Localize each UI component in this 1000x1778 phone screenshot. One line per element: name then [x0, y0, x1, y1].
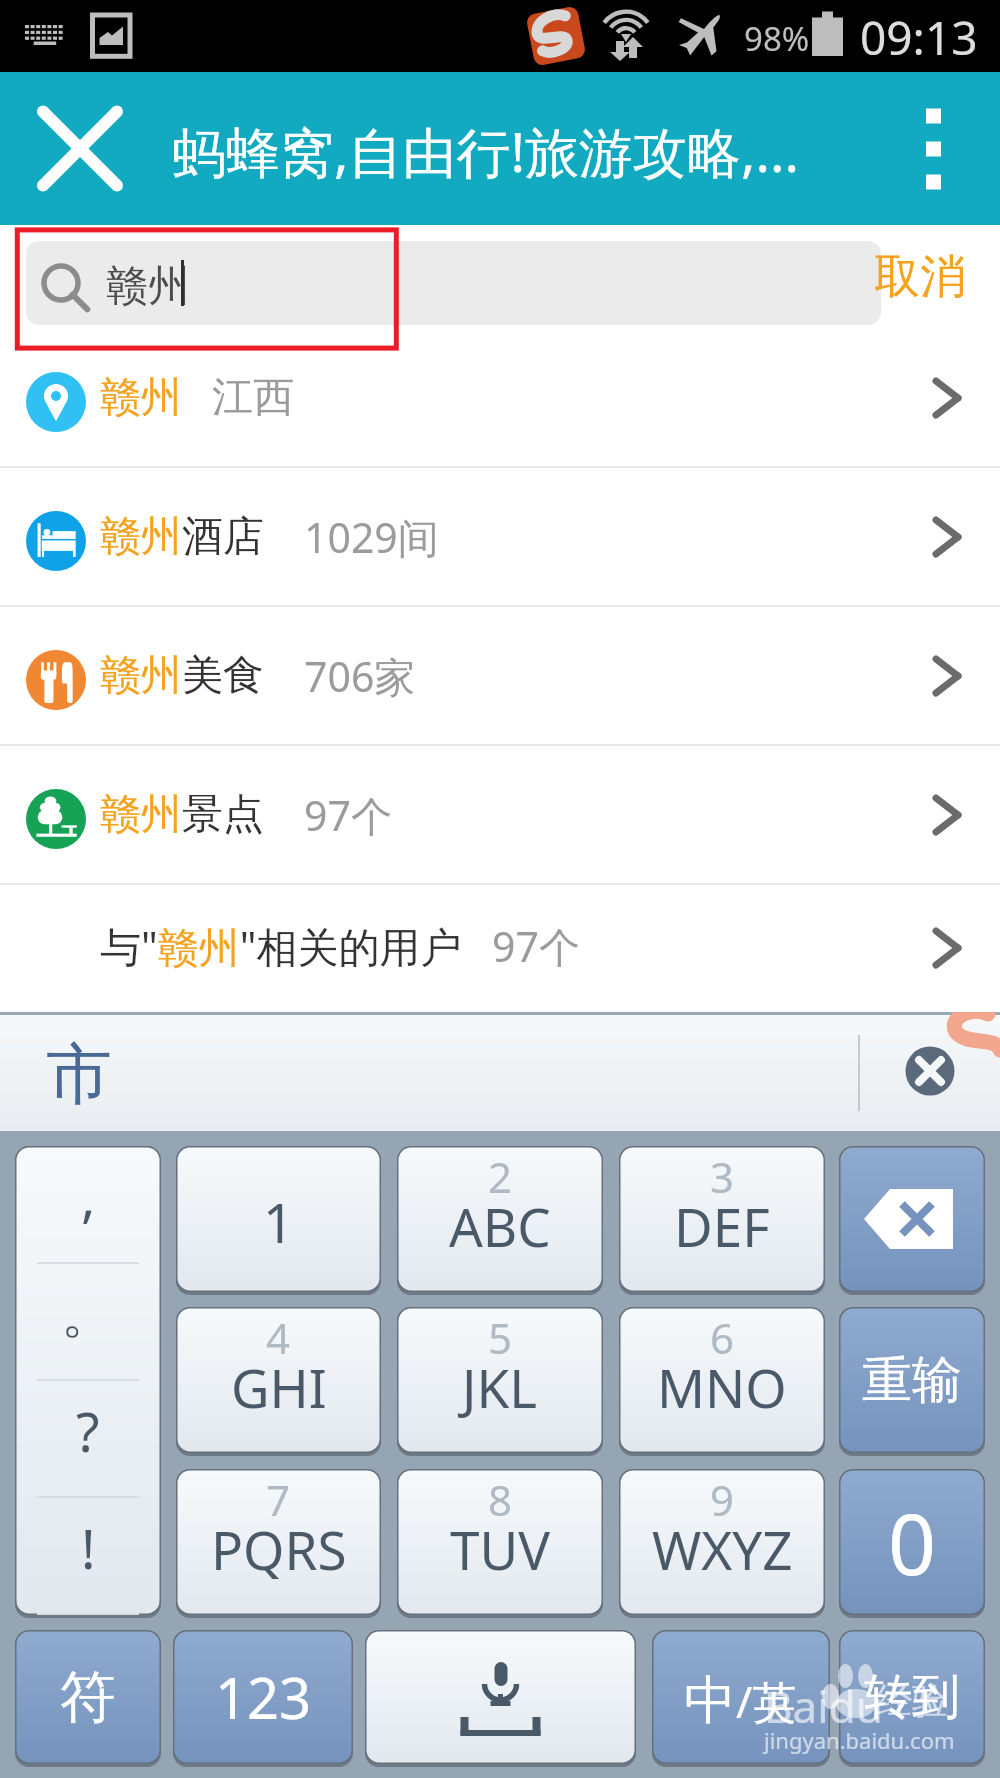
button[interactable]: 1 [176, 1146, 381, 1295]
staticText: 。 [61, 1280, 115, 1348]
staticText: 09:13 [860, 6, 978, 69]
staticText: 97个 [304, 787, 392, 843]
button[interactable]: 赣州景点 [0, 745, 1000, 884]
button[interactable]: 重输 [839, 1307, 985, 1456]
button[interactable]: 3 [619, 1146, 825, 1295]
button[interactable]: Voice input [365, 1630, 636, 1767]
staticText: ABC [449, 1190, 551, 1262]
staticText: 0 [888, 1485, 937, 1599]
button[interactable]: 赣州美食 [0, 606, 1000, 745]
staticText: 赣州美食 [100, 650, 264, 702]
staticText: 重输 [862, 1349, 962, 1412]
button[interactable]: 符 [15, 1630, 161, 1767]
staticText: 1029间 [304, 509, 439, 565]
staticText: 2 [488, 1148, 513, 1205]
button[interactable]: More options [890, 72, 1000, 225]
staticText: 与"赣州"相关的用户 [100, 918, 462, 974]
button[interactable]: 转到 [839, 1630, 985, 1767]
button[interactable]: 9 [619, 1469, 825, 1618]
staticText: MNO [657, 1351, 787, 1423]
staticText: 赣州 [106, 260, 190, 313]
staticText: 9 [710, 1471, 735, 1528]
staticText: 5 [488, 1309, 513, 1366]
staticText: 取消 [874, 248, 966, 306]
button[interactable]: Clear input [894, 1035, 966, 1107]
staticText: Baidu [764, 1676, 883, 1736]
button[interactable]: 4 [176, 1307, 381, 1456]
staticText: jingyan.baidu.com [764, 1725, 955, 1755]
button[interactable]: 123 [173, 1630, 353, 1767]
staticText: 赣州景点 [100, 789, 264, 841]
staticText: , [81, 1159, 96, 1233]
staticText: TUV [450, 1513, 551, 1585]
staticText: 赣州 [100, 372, 182, 424]
button[interactable]: 5 [397, 1307, 603, 1456]
staticText: 97个 [492, 918, 580, 974]
staticText: JKL [462, 1351, 538, 1423]
staticText: 符 [60, 1662, 116, 1733]
staticText: /英 [736, 1671, 797, 1731]
staticText: 转到 [864, 1667, 960, 1727]
staticText: 中 [684, 1668, 736, 1734]
staticText: PQRS [211, 1513, 347, 1585]
staticText: 市 [46, 1033, 112, 1116]
staticText: 3 [710, 1148, 735, 1205]
button[interactable]: 赣州 [26, 241, 881, 325]
staticText: 7 [266, 1471, 291, 1528]
button[interactable]: 0 [839, 1469, 985, 1618]
staticText: 123 [215, 1659, 312, 1735]
button[interactable]: 与"赣州"相关的用户 [0, 884, 1000, 1012]
button[interactable]: Backspace [839, 1146, 985, 1295]
staticText: 6 [710, 1309, 735, 1366]
staticText: 706家 [304, 648, 416, 704]
button[interactable]: 6 [619, 1307, 825, 1456]
staticText: 4 [266, 1309, 291, 1366]
button[interactable]: 赣州 [0, 328, 1000, 467]
button[interactable]: 取消 [868, 236, 972, 318]
button[interactable]: Punctuation [15, 1146, 161, 1618]
staticText: 赣州酒店 [100, 511, 264, 563]
button[interactable]: 中 [652, 1630, 830, 1767]
staticText: DEF [674, 1190, 770, 1262]
staticText: GHI [231, 1351, 327, 1423]
button[interactable]: 8 [397, 1469, 603, 1618]
staticText: 江西 [212, 372, 294, 424]
staticText: ? [76, 1394, 100, 1468]
button[interactable]: 7 [176, 1469, 381, 1618]
staticText: 8 [488, 1471, 513, 1528]
staticText: 98% [744, 16, 810, 61]
button[interactable]: Close [0, 72, 160, 225]
button[interactable]: 赣州酒店 [0, 467, 1000, 606]
staticText: 1 [263, 1185, 294, 1259]
staticText: 蚂蜂窝,自由行!旅游攻略,... [172, 114, 799, 188]
staticText: ! [81, 1511, 96, 1585]
staticText: 经验 [876, 1678, 948, 1723]
button[interactable]: 2 [397, 1146, 603, 1295]
staticText: WXYZ [652, 1513, 793, 1585]
